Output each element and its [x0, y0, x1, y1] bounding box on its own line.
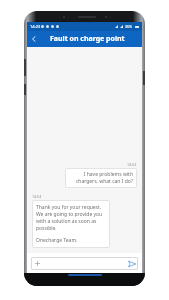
- button[interactable]: Send: [125, 257, 138, 270]
- staticText: Fault on charge point: [50, 34, 125, 44]
- button[interactable]: I have problems with chargers, what can …: [65, 168, 137, 188]
- staticText: Onecharge Team.: [36, 237, 78, 244]
- staticText: 14:52: [127, 162, 137, 167]
- staticText: I have problems with chargers, what can …: [69, 171, 133, 185]
- staticText: 14:23: [30, 24, 41, 29]
- staticText: Thank you for your request. We are going…: [36, 204, 106, 232]
- button[interactable]: Back: [27, 31, 41, 47]
- staticText: 36%: [125, 24, 133, 29]
- button[interactable]: Thank you for your request. We are going…: [32, 200, 110, 248]
- button[interactable]: Add attachment: [31, 257, 44, 270]
- staticText: 14:54: [32, 194, 42, 199]
